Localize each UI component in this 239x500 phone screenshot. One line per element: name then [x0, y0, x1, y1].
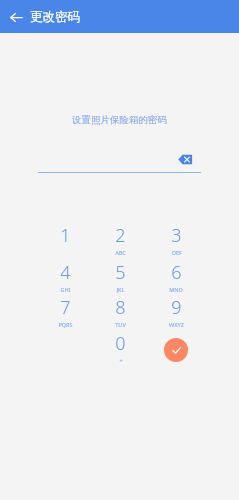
button[interactable]: 3: [150, 223, 202, 257]
staticText: 9: [171, 295, 182, 320]
button[interactable]: 9: [150, 295, 202, 329]
staticText: 1: [60, 223, 71, 248]
staticText: TUV: [115, 321, 126, 328]
button[interactable]: 7: [39, 295, 91, 329]
staticText: WXYZ: [169, 321, 184, 328]
button[interactable]: 2: [94, 223, 146, 257]
button[interactable]: 8: [94, 295, 146, 329]
button[interactable]: 0: [94, 331, 146, 365]
staticText: +: [119, 357, 123, 364]
staticText: PQRS: [58, 321, 73, 328]
button[interactable]: 5: [94, 260, 146, 294]
button[interactable]: Backspace: [173, 150, 197, 169]
staticText: 5: [115, 260, 126, 285]
button[interactable]: 1: [39, 223, 91, 257]
staticText: 设置照片保险箱的密码: [0, 114, 239, 126]
staticText: DEF: [172, 249, 182, 256]
staticText: 8: [115, 295, 126, 320]
button[interactable]: 4: [39, 260, 91, 294]
staticText: GHI: [60, 286, 71, 293]
staticText: 更改密码: [30, 9, 80, 25]
button[interactable]: 6: [150, 260, 202, 294]
staticText: MNO: [169, 286, 183, 293]
staticText: 0: [115, 331, 126, 356]
staticText: ABC: [115, 249, 126, 256]
button[interactable]: Back: [6, 7, 27, 28]
staticText: JKL: [116, 286, 125, 293]
staticText: 6: [171, 260, 182, 285]
staticText: 7: [60, 295, 71, 320]
staticText: 3: [171, 223, 182, 248]
staticText: 4: [60, 260, 71, 285]
button[interactable]: Confirm: [164, 338, 188, 362]
staticText: 2: [115, 223, 126, 248]
